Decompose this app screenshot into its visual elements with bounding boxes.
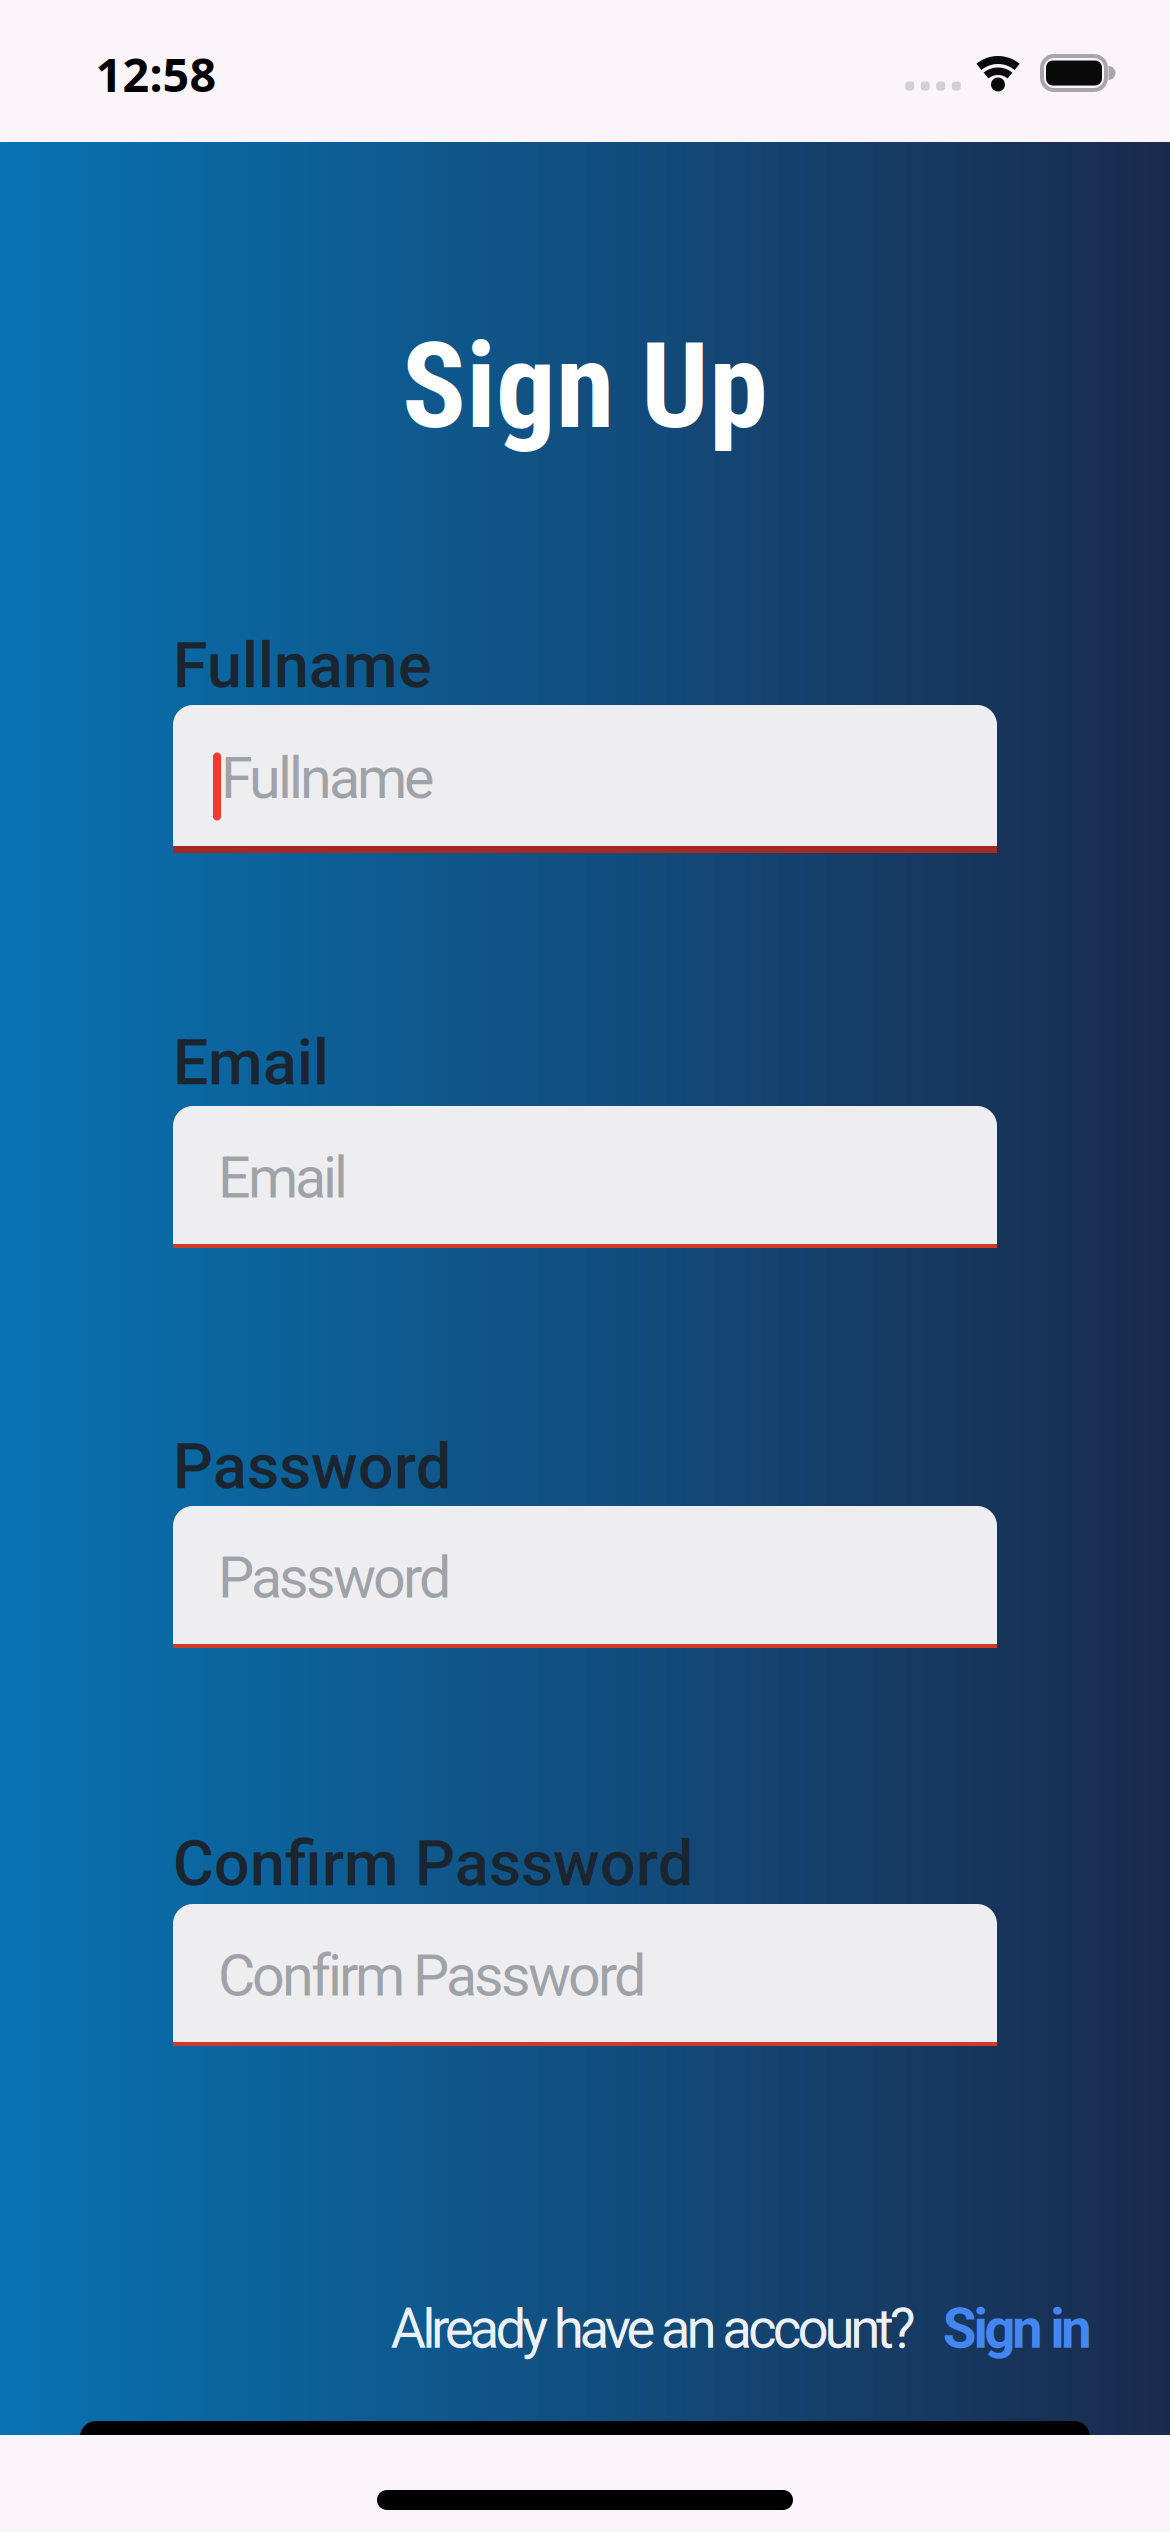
staticText: Password	[218, 1544, 451, 1612]
button[interactable]: Confirm Password	[173, 1904, 997, 2046]
staticText: Email	[218, 1144, 348, 1212]
staticText: Sign in	[943, 2297, 1092, 2361]
button[interactable]: Sign in	[943, 2297, 1092, 2361]
button[interactable]: Password	[173, 1506, 997, 1648]
staticText: Password	[173, 1430, 451, 1503]
staticText: Confirm Password	[173, 1827, 693, 1900]
staticText: Email	[173, 1026, 329, 1099]
staticText: 12:58	[95, 43, 216, 105]
staticText: Fullname	[221, 745, 434, 812]
button[interactable]: Fullname	[173, 705, 997, 853]
staticText: Sign Up	[402, 317, 768, 456]
staticText: Confirm Password	[218, 1942, 646, 2010]
button[interactable]: Email	[173, 1106, 997, 1248]
staticText: Fullname	[173, 629, 432, 702]
staticText: Already have an account?	[390, 2297, 916, 2361]
